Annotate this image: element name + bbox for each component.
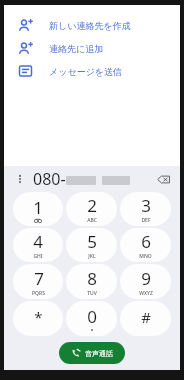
staticText: 音声通話 bbox=[85, 349, 113, 358]
button[interactable]: 新しい連絡先を作成 bbox=[4, 14, 180, 37]
staticText: 080- bbox=[33, 168, 66, 190]
staticText: ABC bbox=[87, 217, 97, 224]
staticText: 連絡先に追加 bbox=[49, 43, 104, 54]
staticText: 0 bbox=[87, 305, 97, 328]
staticText: 5 bbox=[87, 230, 97, 253]
button[interactable]: 5 bbox=[66, 228, 117, 262]
staticText: JKL bbox=[88, 253, 96, 260]
staticText: TUV bbox=[87, 290, 97, 297]
staticText: メッセージを送信 bbox=[49, 66, 123, 77]
staticText: * bbox=[34, 307, 43, 327]
button[interactable]: メッセージを送信 bbox=[4, 60, 180, 83]
button[interactable]: 4 bbox=[13, 228, 63, 262]
staticText: 1 bbox=[33, 196, 43, 219]
staticText: MNO bbox=[139, 253, 152, 260]
button[interactable]: 6 bbox=[120, 228, 171, 262]
button[interactable]: 9 bbox=[120, 264, 171, 299]
button[interactable]: 2 bbox=[66, 192, 117, 226]
button[interactable]: 0 bbox=[66, 301, 117, 336]
staticText: 6 bbox=[141, 230, 151, 253]
staticText: WXYZ bbox=[139, 290, 153, 297]
staticText: 4 bbox=[33, 230, 43, 253]
button[interactable]: More options bbox=[12, 171, 28, 187]
staticText: 新しい連絡先を作成 bbox=[49, 20, 131, 31]
staticText: # bbox=[141, 307, 151, 327]
staticText: PQRS bbox=[32, 290, 45, 297]
button[interactable]: 8 bbox=[66, 264, 117, 299]
staticText: 8 bbox=[87, 267, 97, 290]
staticText: 7 bbox=[34, 267, 44, 290]
button[interactable]: Delete bbox=[154, 170, 172, 188]
button[interactable]: 連絡先に追加 bbox=[4, 37, 180, 60]
staticText: GHI bbox=[33, 253, 43, 260]
staticText: 2 bbox=[87, 194, 97, 217]
staticText: 9 bbox=[141, 267, 151, 290]
button[interactable]: 7 bbox=[13, 264, 63, 299]
staticText: DEF bbox=[141, 217, 151, 224]
button[interactable]: * bbox=[13, 301, 63, 336]
button[interactable]: # bbox=[120, 301, 171, 336]
button[interactable]: 1 bbox=[13, 192, 63, 226]
button[interactable]: 音声通話 bbox=[59, 342, 125, 364]
staticText: 3 bbox=[141, 194, 151, 217]
button[interactable]: 3 bbox=[120, 192, 171, 226]
